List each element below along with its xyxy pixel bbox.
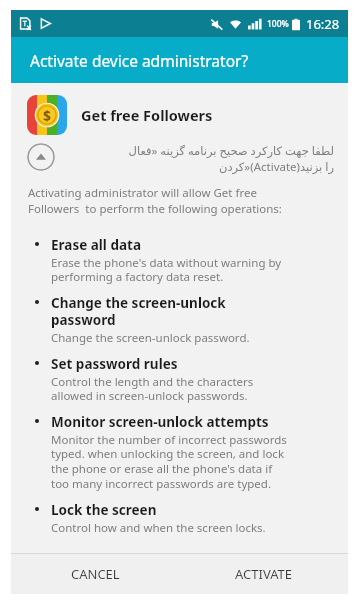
staticText: Set password rules [51,355,178,373]
button[interactable]: Set password rules [11,348,348,406]
staticText: Change the screen-unlock password [51,294,226,329]
staticText: لطفا جهت کارکرد صحیح برنامه گزینه «فعال … [65,143,334,175]
staticText: CANCEL [71,565,120,583]
staticText: Monitor the number of incorrect password… [51,432,287,492]
staticText: 16:28 [306,15,340,33]
button[interactable]: Collapse [27,143,55,171]
staticText: Control the length and the characters al… [51,374,254,404]
button[interactable]: ACTIVATE [179,554,348,594]
staticText: Change the screen-unlock password. [51,330,250,346]
staticText: Lock the screen [51,501,157,519]
staticText: Activating administrator will allow Get … [28,185,282,216]
staticText: Monitor screen-unlock attempts [51,413,269,431]
staticText: Activate device administrator? [30,50,249,71]
staticText: 100% [267,18,289,30]
staticText: Control how and when the screen locks. [51,520,266,536]
button[interactable]: CANCEL [11,554,179,594]
staticText: ACTIVATE [235,565,293,583]
staticText: Get free Followers [81,105,213,125]
button[interactable]: Erase all data [11,229,348,287]
button[interactable]: Lock the screen [11,494,348,538]
button[interactable]: Monitor screen-unlock attempts [11,406,348,494]
staticText: $ [43,106,52,125]
staticText: Erase the phone's data without warning b… [51,255,282,285]
staticText: Erase all data [51,236,141,254]
button[interactable]: Change the screen-unlock password [11,287,348,348]
